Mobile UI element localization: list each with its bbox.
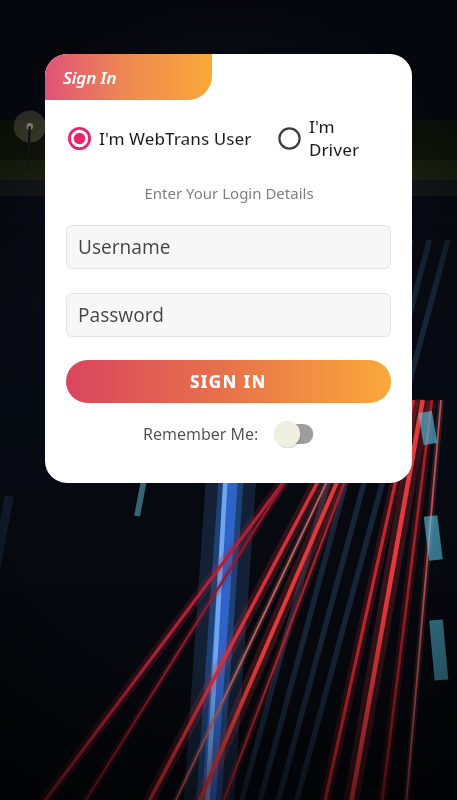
button[interactable]: Sign In	[45, 54, 212, 100]
staticText: SIGN IN	[190, 370, 267, 393]
button[interactable]: I'm Driver	[276, 111, 391, 165]
button[interactable]: SIGN IN	[66, 360, 391, 403]
button[interactable]: I'm WebTrans User	[66, 123, 254, 154]
staticText: Sign In	[63, 66, 117, 89]
button[interactable]: Remember Me toggle	[271, 420, 315, 448]
staticText: Enter Your Login Details	[144, 183, 314, 203]
staticText: I'm WebTrans User	[99, 127, 252, 150]
staticText: Remember Me:	[143, 423, 259, 445]
button[interactable]: Password	[66, 293, 391, 337]
staticText: I'm Driver	[309, 115, 389, 161]
staticText: Username	[78, 234, 171, 260]
button[interactable]: Username	[66, 225, 391, 269]
staticText: Password	[78, 302, 164, 328]
